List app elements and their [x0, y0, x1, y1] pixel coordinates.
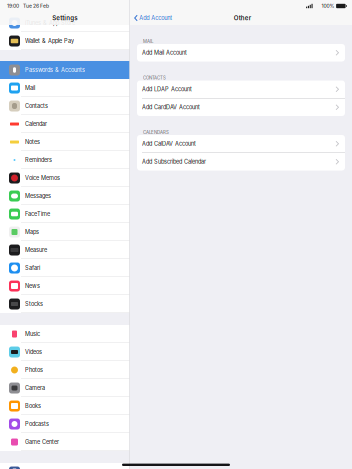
button[interactable]: Videos [0, 343, 129, 361]
button[interactable]: Game Center [0, 433, 129, 451]
button[interactable]: Photos [0, 361, 129, 379]
staticText: Add LDAP Account [142, 86, 192, 93]
button[interactable]: Measure [0, 241, 129, 259]
staticText: Add Subscribed Calendar [142, 158, 206, 165]
button[interactable]: Podcasts [0, 415, 129, 433]
staticText: Stocks [25, 301, 43, 307]
staticText: Messages [25, 193, 51, 199]
button[interactable]: Music [0, 325, 129, 343]
staticText: Passwords & Accounts [25, 67, 85, 73]
staticText: CONTACTS [143, 75, 166, 80]
staticText: 100% [322, 3, 335, 9]
button[interactable]: FaceTime [0, 205, 129, 223]
staticText: 19:00 [7, 3, 19, 9]
button[interactable]: Books [0, 397, 129, 415]
staticText: Camera [25, 385, 45, 391]
button[interactable]: Calendar [0, 115, 129, 133]
staticText: Music [25, 331, 40, 337]
button[interactable]: Add CalDAV Account [137, 135, 345, 152]
staticText: CALENDARS [143, 130, 169, 135]
button[interactable]: Add LDAP Account [137, 80, 345, 98]
button[interactable]: iTunes & App Store [0, 14, 129, 32]
button[interactable]: Passwords & Accounts [0, 61, 129, 79]
button[interactable]: Add Account [130, 11, 177, 25]
button[interactable]: Reminders [0, 151, 129, 169]
button[interactable]: Notes [0, 133, 129, 151]
button[interactable]: Camera [0, 379, 129, 397]
staticText: Settings [52, 14, 77, 22]
staticText: MAIL [143, 39, 153, 44]
button[interactable]: Add CardDAV Account [137, 98, 345, 116]
staticText: Voice Memos [25, 175, 60, 181]
button[interactable]: Wallet & Apple Pay [0, 32, 129, 50]
button[interactable]: Add Mail Account [137, 44, 345, 61]
staticText: Books [25, 403, 41, 409]
staticText: Add Account [139, 15, 172, 21]
button[interactable]: News [0, 277, 129, 295]
staticText: Tue 26 Feb [23, 3, 49, 9]
staticText: Photos [25, 367, 43, 373]
staticText: Calendar [25, 121, 47, 127]
button[interactable]: Facebook [0, 463, 129, 469]
button[interactable]: Add Subscribed Calendar [137, 153, 345, 170]
button[interactable]: Maps [0, 223, 129, 241]
staticText: Measure [25, 247, 47, 253]
button[interactable]: Voice Memos [0, 169, 129, 187]
staticText: Wallet & Apple Pay [25, 38, 74, 44]
staticText: Videos [25, 349, 42, 355]
staticText: Game Center [25, 439, 59, 445]
staticText: Add CardDAV Account [142, 104, 200, 111]
staticText: Podcasts [25, 421, 49, 427]
button[interactable]: Mail [0, 79, 129, 97]
staticText: Add CalDAV Account [142, 140, 196, 147]
staticText: iTunes & App Store [25, 20, 75, 26]
button[interactable]: Contacts [0, 97, 129, 115]
staticText: Maps [25, 229, 39, 235]
staticText: FaceTime [25, 211, 50, 217]
staticText: Reminders [25, 157, 52, 163]
staticText: Notes [25, 139, 40, 145]
staticText: Other [234, 14, 251, 22]
button[interactable]: Messages [0, 187, 129, 205]
staticText: News [25, 283, 40, 289]
staticText: Mail [25, 85, 35, 91]
staticText: Contacts [25, 103, 48, 109]
staticText: Safari [25, 265, 40, 271]
button[interactable]: Stocks [0, 295, 129, 313]
button[interactable]: Safari [0, 259, 129, 277]
staticText: Add Mail Account [142, 49, 187, 56]
